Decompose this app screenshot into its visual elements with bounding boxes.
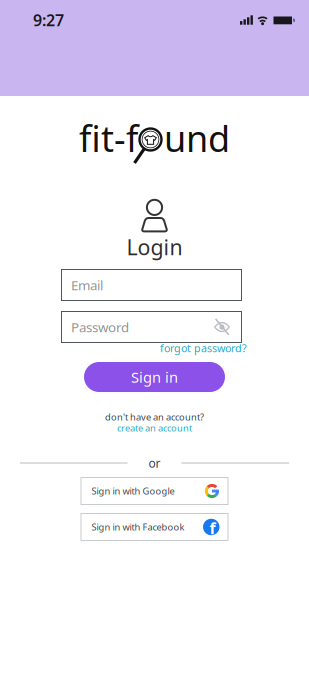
staticText: und [164, 114, 230, 162]
staticText: 9:27 [33, 9, 64, 31]
button[interactable]: forgot password? [160, 341, 247, 355]
button[interactable]: Sign in with Google [80, 477, 228, 505]
button[interactable]: Show password [214, 320, 242, 333]
button[interactable]: Sign in with Facebook [80, 513, 228, 541]
staticText: forgot password? [160, 341, 247, 355]
staticText: Sign in with Facebook [91, 521, 184, 533]
button[interactable]: Sign in [84, 362, 225, 392]
staticText: or [148, 455, 160, 471]
staticText: Login [126, 233, 182, 261]
staticText: Password [71, 318, 129, 336]
staticText: Email [71, 276, 103, 294]
staticText: f [209, 517, 215, 539]
staticText: don't have an account? [105, 411, 204, 423]
staticText: Sign in [131, 367, 178, 387]
button[interactable]: create an account [117, 422, 192, 434]
staticText: Sign in with Google [91, 485, 174, 497]
staticText: fit-f [79, 114, 138, 162]
staticText: create an account [117, 422, 192, 434]
